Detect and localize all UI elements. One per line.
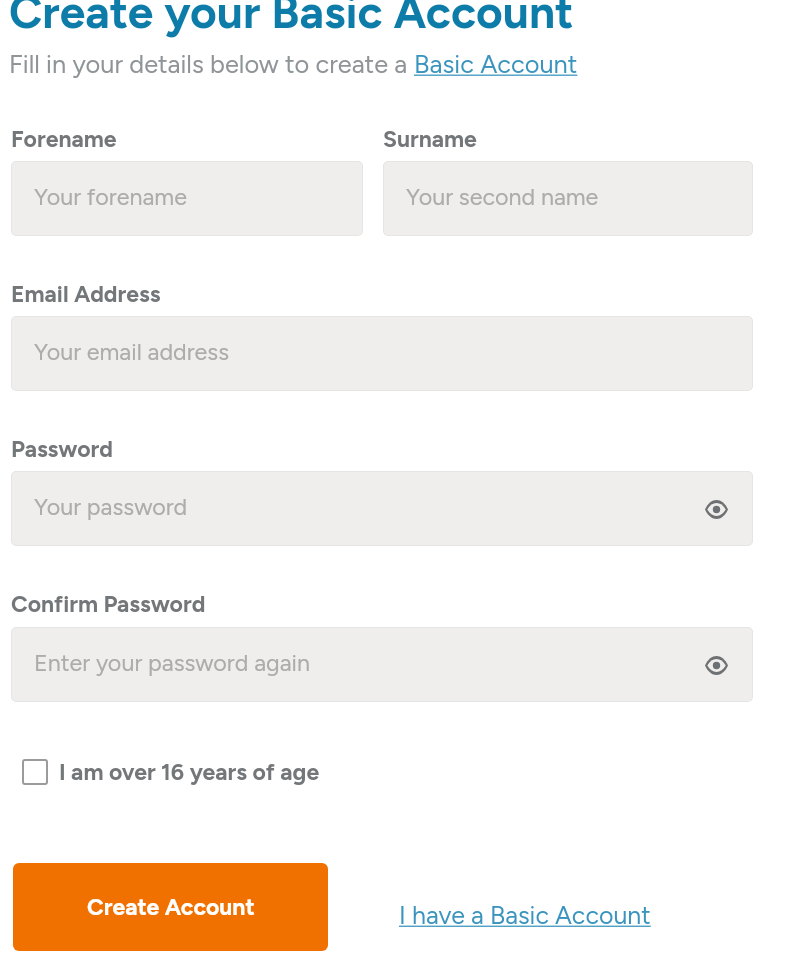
- staticText: Your second name: [406, 183, 599, 211]
- staticText: Your email address: [34, 338, 230, 366]
- button[interactable]: Show password: [700, 493, 732, 525]
- button[interactable]: I have a Basic Account: [399, 900, 651, 930]
- staticText: Create Account: [87, 893, 255, 921]
- button[interactable]: Your email address: [11, 316, 753, 391]
- staticText: Fill in your details below to create a: [9, 49, 414, 79]
- button[interactable]: Enter your password again: [11, 627, 753, 702]
- staticText: I am over 16 years of age: [59, 758, 320, 786]
- staticText: Confirm Password: [11, 590, 206, 618]
- button[interactable]: Your second name: [383, 161, 753, 236]
- button[interactable]: I am over 16 years of age: [22, 758, 320, 786]
- staticText: Enter your password again: [34, 649, 310, 677]
- staticText: Your password: [34, 493, 188, 521]
- button[interactable]: Your forename: [11, 161, 363, 236]
- staticText: Password: [11, 435, 113, 463]
- staticText: Forename: [11, 125, 117, 153]
- button[interactable]: Create Account: [13, 863, 328, 951]
- staticText: Surname: [383, 125, 477, 153]
- button[interactable]: Show password: [700, 649, 732, 681]
- staticText: Create your Basic Account: [9, 0, 574, 39]
- staticText: Email Address: [11, 280, 161, 308]
- button[interactable]: Basic Account: [414, 49, 578, 79]
- button[interactable]: Your password: [11, 471, 753, 546]
- staticText: Your forename: [34, 183, 187, 211]
